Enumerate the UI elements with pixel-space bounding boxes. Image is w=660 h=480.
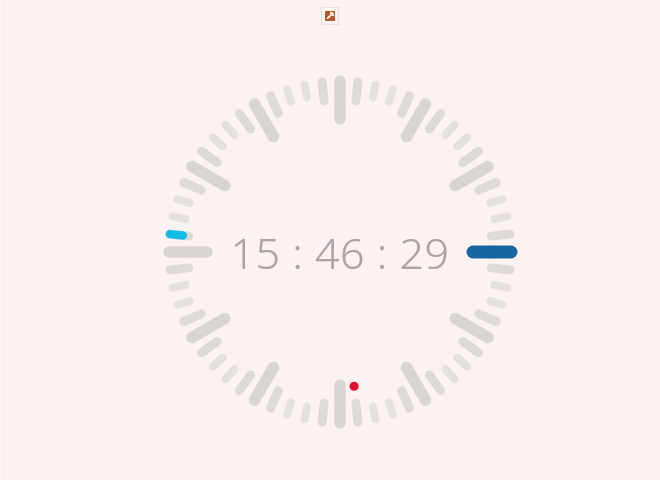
staticText: 15 : 46 : 29 — [230, 223, 450, 282]
button[interactable]: Open app — [321, 7, 339, 25]
